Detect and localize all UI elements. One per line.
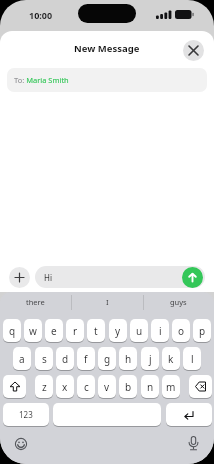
button[interactable]: y [109,319,127,342]
staticText: n [147,380,154,394]
button[interactable]: d [56,347,74,370]
staticText: s [42,352,47,366]
button[interactable] [12,435,29,452]
button[interactable]: n [141,375,159,398]
staticText: l [191,352,194,366]
button[interactable]: guys [143,293,214,311]
button[interactable]: I [72,293,143,311]
button[interactable]: q [3,319,21,342]
staticText: z [42,380,47,394]
button[interactable]: u [130,319,148,342]
button[interactable]: w [24,319,42,342]
staticText: d [62,352,69,366]
button[interactable]: t [87,319,105,342]
button[interactable] [185,434,202,453]
button[interactable]: l [183,347,201,370]
button[interactable]: g [98,347,116,370]
staticText: Hi [44,272,52,283]
staticText: 10:00 [29,9,53,21]
button[interactable]: s [35,347,53,370]
staticText: m [166,380,176,394]
button[interactable]: e [45,319,63,342]
staticText: o [178,324,185,338]
button[interactable]: m [162,375,180,398]
button[interactable]: h [119,347,137,370]
button[interactable]: i [151,319,169,342]
staticText: w [29,324,37,338]
staticText: i [159,324,162,338]
staticText: t [94,324,98,338]
button[interactable]: f [77,347,95,370]
staticText: b [125,380,132,394]
button[interactable] [9,267,30,288]
staticText: New Message [74,42,140,55]
button[interactable]: o [172,319,190,342]
staticText: e [51,324,57,338]
button[interactable]: there [0,293,71,311]
staticText: p [199,324,206,338]
staticText: f [84,352,88,366]
button[interactable]: k [162,347,180,370]
staticText: q [9,324,16,338]
staticText: v [104,380,110,394]
button[interactable] [166,403,212,426]
button[interactable]: b [119,375,137,398]
staticText: guys [170,297,187,307]
staticText: To: Maria Smith [14,75,69,85]
staticText: g [104,352,111,366]
button[interactable] [189,375,212,398]
button[interactable]: x [56,375,74,398]
button[interactable]: v [98,375,116,398]
button[interactable]: Hi [35,266,205,288]
button[interactable]: j [141,347,159,370]
button[interactable] [182,267,203,288]
button[interactable]: r [66,319,84,342]
staticText: a [19,352,25,366]
staticText: k [168,352,174,366]
staticText: c [84,380,89,394]
button[interactable]: 123 [3,403,49,426]
staticText: j [149,352,152,366]
button[interactable]: z [35,375,53,398]
button[interactable]: c [77,375,95,398]
staticText: I [106,297,109,307]
staticText: there [26,297,45,307]
staticText: h [125,352,132,366]
button[interactable] [3,375,26,398]
button[interactable]: a [13,347,31,370]
staticText: u [136,324,143,338]
staticText: y [115,324,121,338]
button[interactable]: To: Maria Smith [7,68,207,92]
staticText: 123 [19,409,33,420]
button[interactable]: p [193,319,211,342]
staticText: r [73,324,78,338]
button[interactable] [53,403,161,426]
staticText: x [62,380,68,394]
button[interactable] [183,40,204,61]
